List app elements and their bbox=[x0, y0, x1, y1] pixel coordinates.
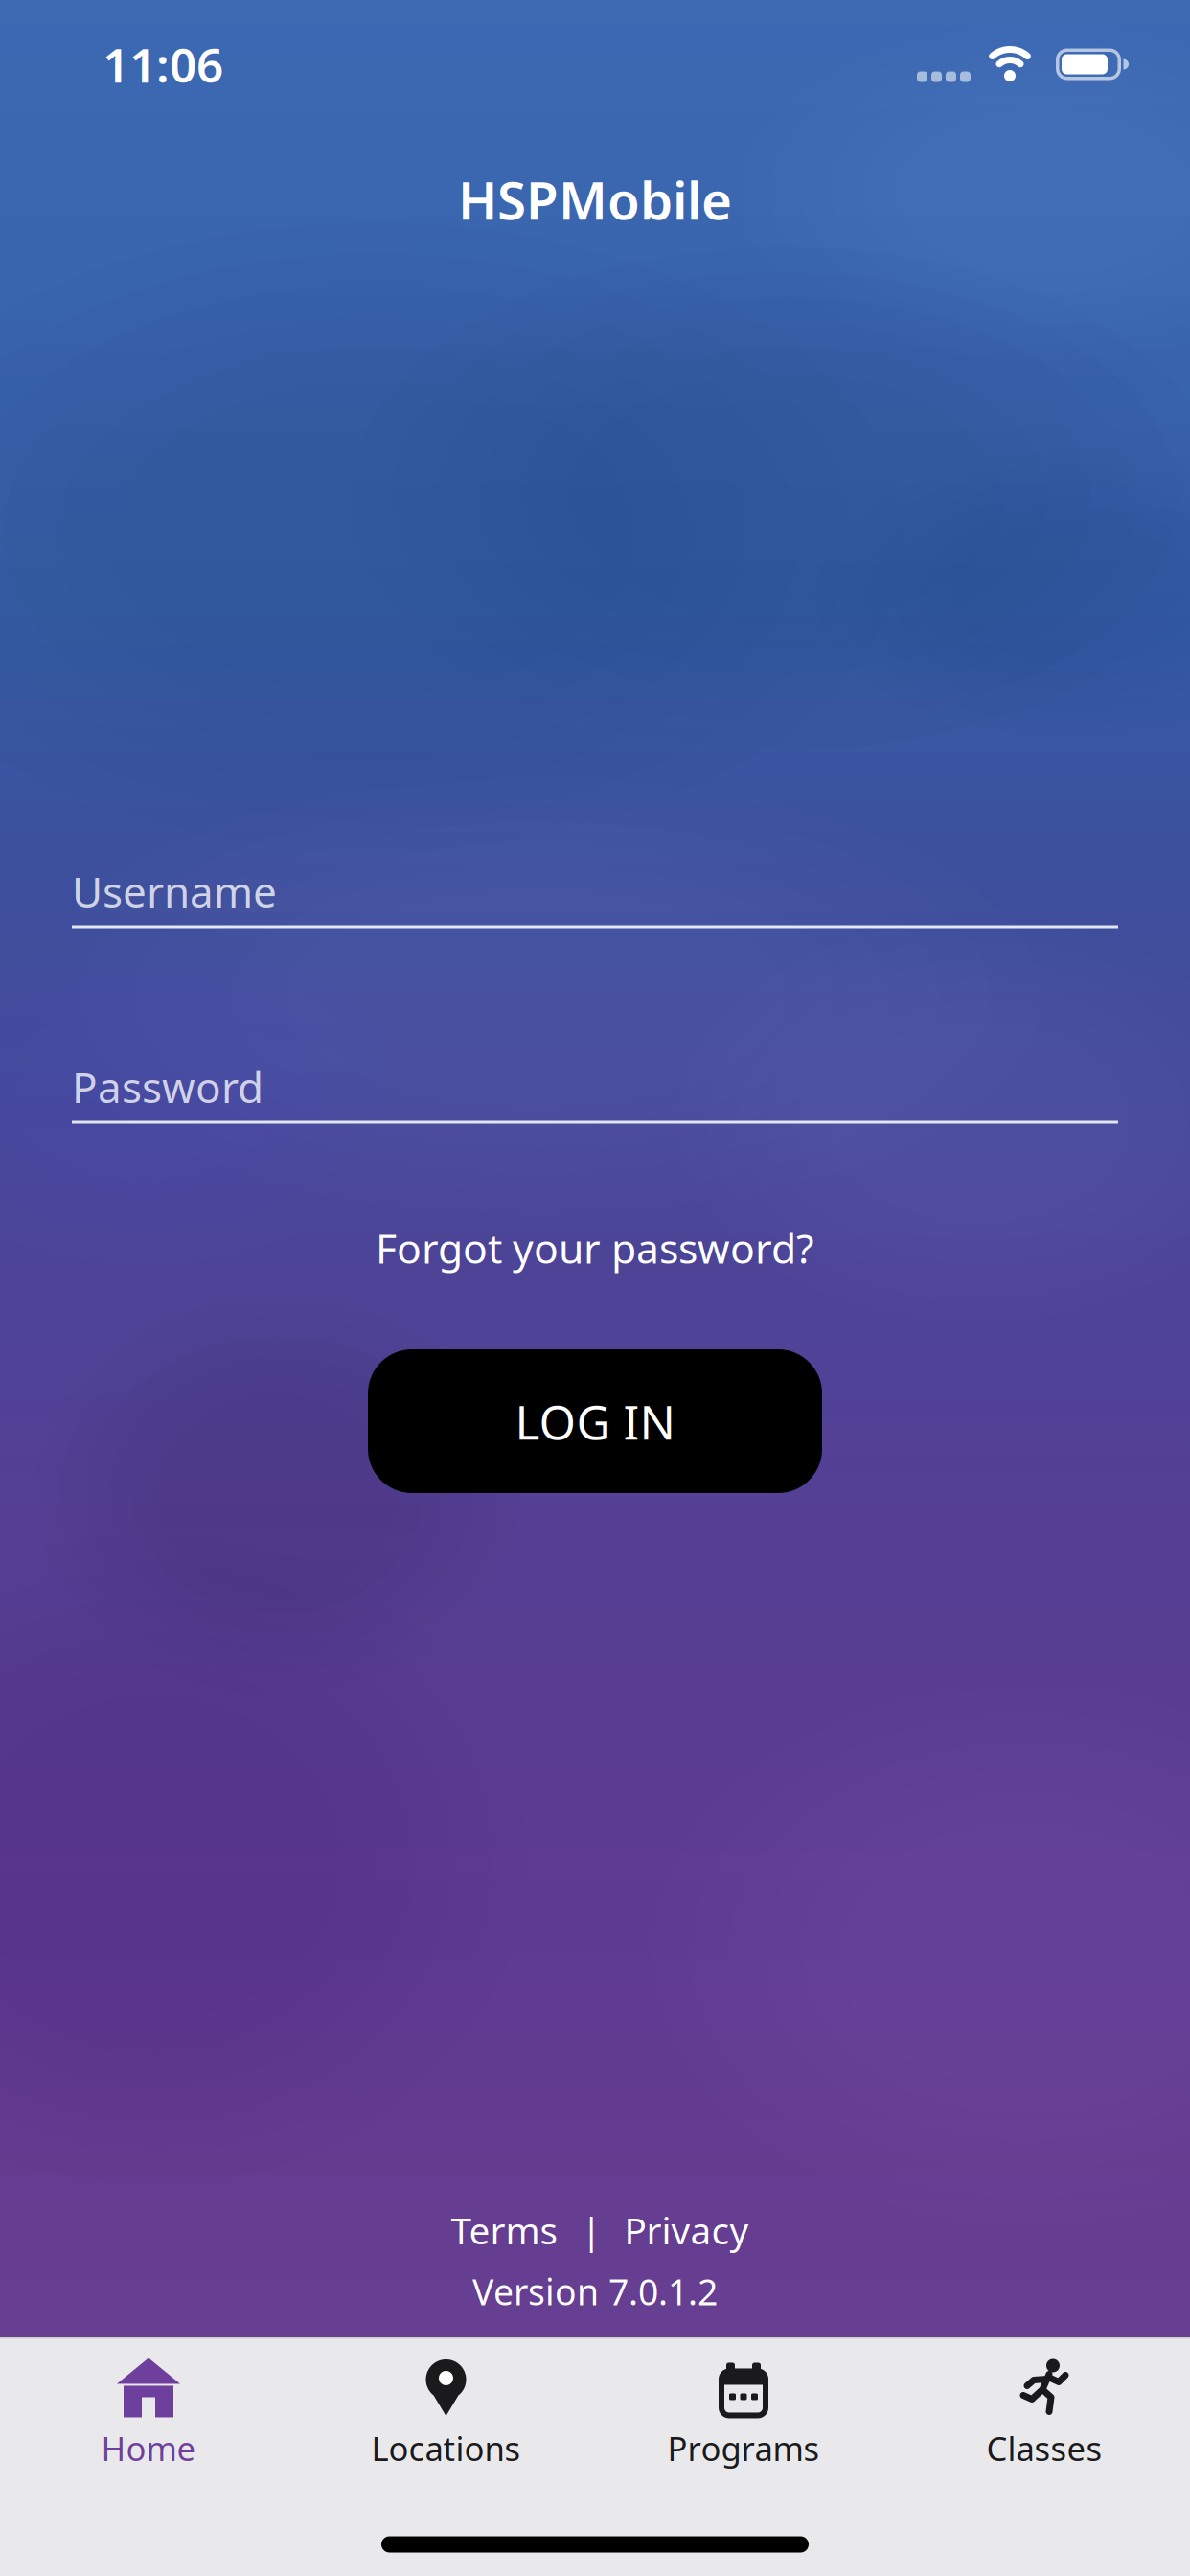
button[interactable]: LOG IN bbox=[368, 1349, 822, 1493]
staticText: Terms bbox=[451, 2205, 558, 2255]
staticText: Password bbox=[72, 1059, 263, 1115]
button[interactable]: Privacy bbox=[624, 2205, 749, 2255]
staticText: HSPMobile bbox=[458, 165, 732, 234]
staticText: Username bbox=[72, 863, 277, 919]
staticText: Programs bbox=[667, 2426, 820, 2470]
staticText: Privacy bbox=[624, 2205, 749, 2255]
staticText: Forgot your password? bbox=[376, 1221, 814, 1275]
button[interactable]: Locations bbox=[297, 2342, 595, 2486]
button[interactable]: Programs bbox=[595, 2342, 892, 2486]
button[interactable]: Forgot your password? bbox=[376, 1221, 814, 1275]
staticText: Version 7.0.1.2 bbox=[472, 2268, 718, 2315]
button[interactable]: Home bbox=[0, 2342, 297, 2486]
staticText: LOG IN bbox=[515, 1390, 675, 1453]
staticText: 11:06 bbox=[103, 33, 223, 96]
staticText: Classes bbox=[986, 2426, 1102, 2470]
button[interactable]: Terms bbox=[451, 2205, 558, 2255]
staticText: | bbox=[581, 2205, 601, 2255]
staticText: Locations bbox=[371, 2426, 521, 2470]
staticText: Home bbox=[101, 2426, 196, 2470]
button[interactable]: Classes bbox=[896, 2342, 1190, 2486]
